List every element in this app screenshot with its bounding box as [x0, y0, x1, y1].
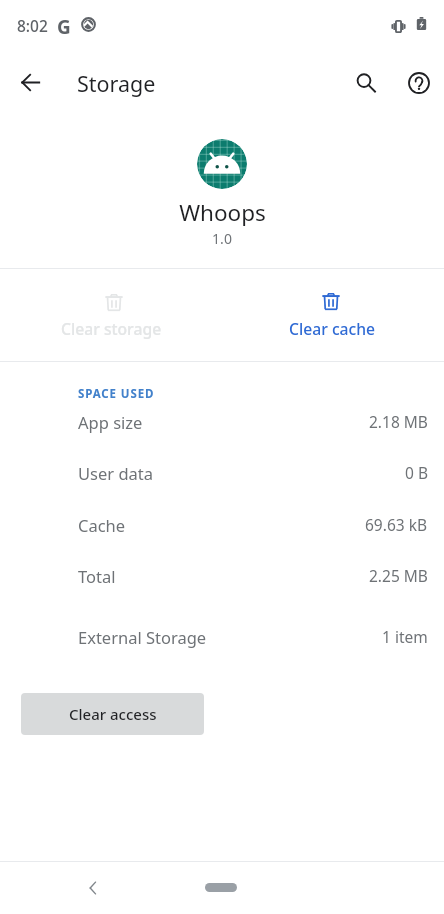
- staticText: External Storage: [78, 626, 207, 648]
- button[interactable]: Home: [205, 883, 237, 892]
- button[interactable]: Clear access: [21, 693, 204, 735]
- staticText: G: [57, 14, 71, 40]
- staticText: 69.63 kB: [365, 514, 428, 535]
- staticText: Storage: [77, 69, 156, 98]
- staticText: 0 B: [405, 462, 428, 483]
- staticText: 8:02: [17, 15, 48, 36]
- staticText: 2.25 MB: [369, 565, 428, 586]
- button[interactable]: App size: [0, 396, 444, 447]
- staticText: Cache: [78, 514, 126, 536]
- staticText: Clear cache: [289, 318, 376, 339]
- staticText: Clear access: [69, 704, 157, 724]
- staticText: 1 item: [382, 626, 428, 647]
- staticText: SPACE USED: [78, 386, 155, 402]
- staticText: App size: [78, 411, 143, 433]
- button[interactable]: Search: [342, 59, 389, 106]
- button[interactable]: Back: [75, 870, 111, 906]
- staticText: 2.18 MB: [369, 411, 428, 432]
- staticText: 1.0: [212, 229, 232, 248]
- button[interactable]: User data: [0, 447, 444, 498]
- button[interactable]: Back: [7, 59, 54, 106]
- staticText: Total: [78, 565, 116, 587]
- button[interactable]: External Storage: [0, 611, 444, 662]
- staticText: User data: [78, 462, 153, 484]
- staticText: Whoops: [179, 197, 266, 228]
- button[interactable]: Cache: [0, 499, 444, 550]
- button[interactable]: Clear storage: [0, 269, 222, 361]
- button[interactable]: Help: [395, 59, 442, 106]
- staticText: Clear storage: [61, 318, 162, 339]
- button[interactable]: Clear cache: [222, 269, 444, 361]
- button[interactable]: Total: [0, 550, 444, 601]
